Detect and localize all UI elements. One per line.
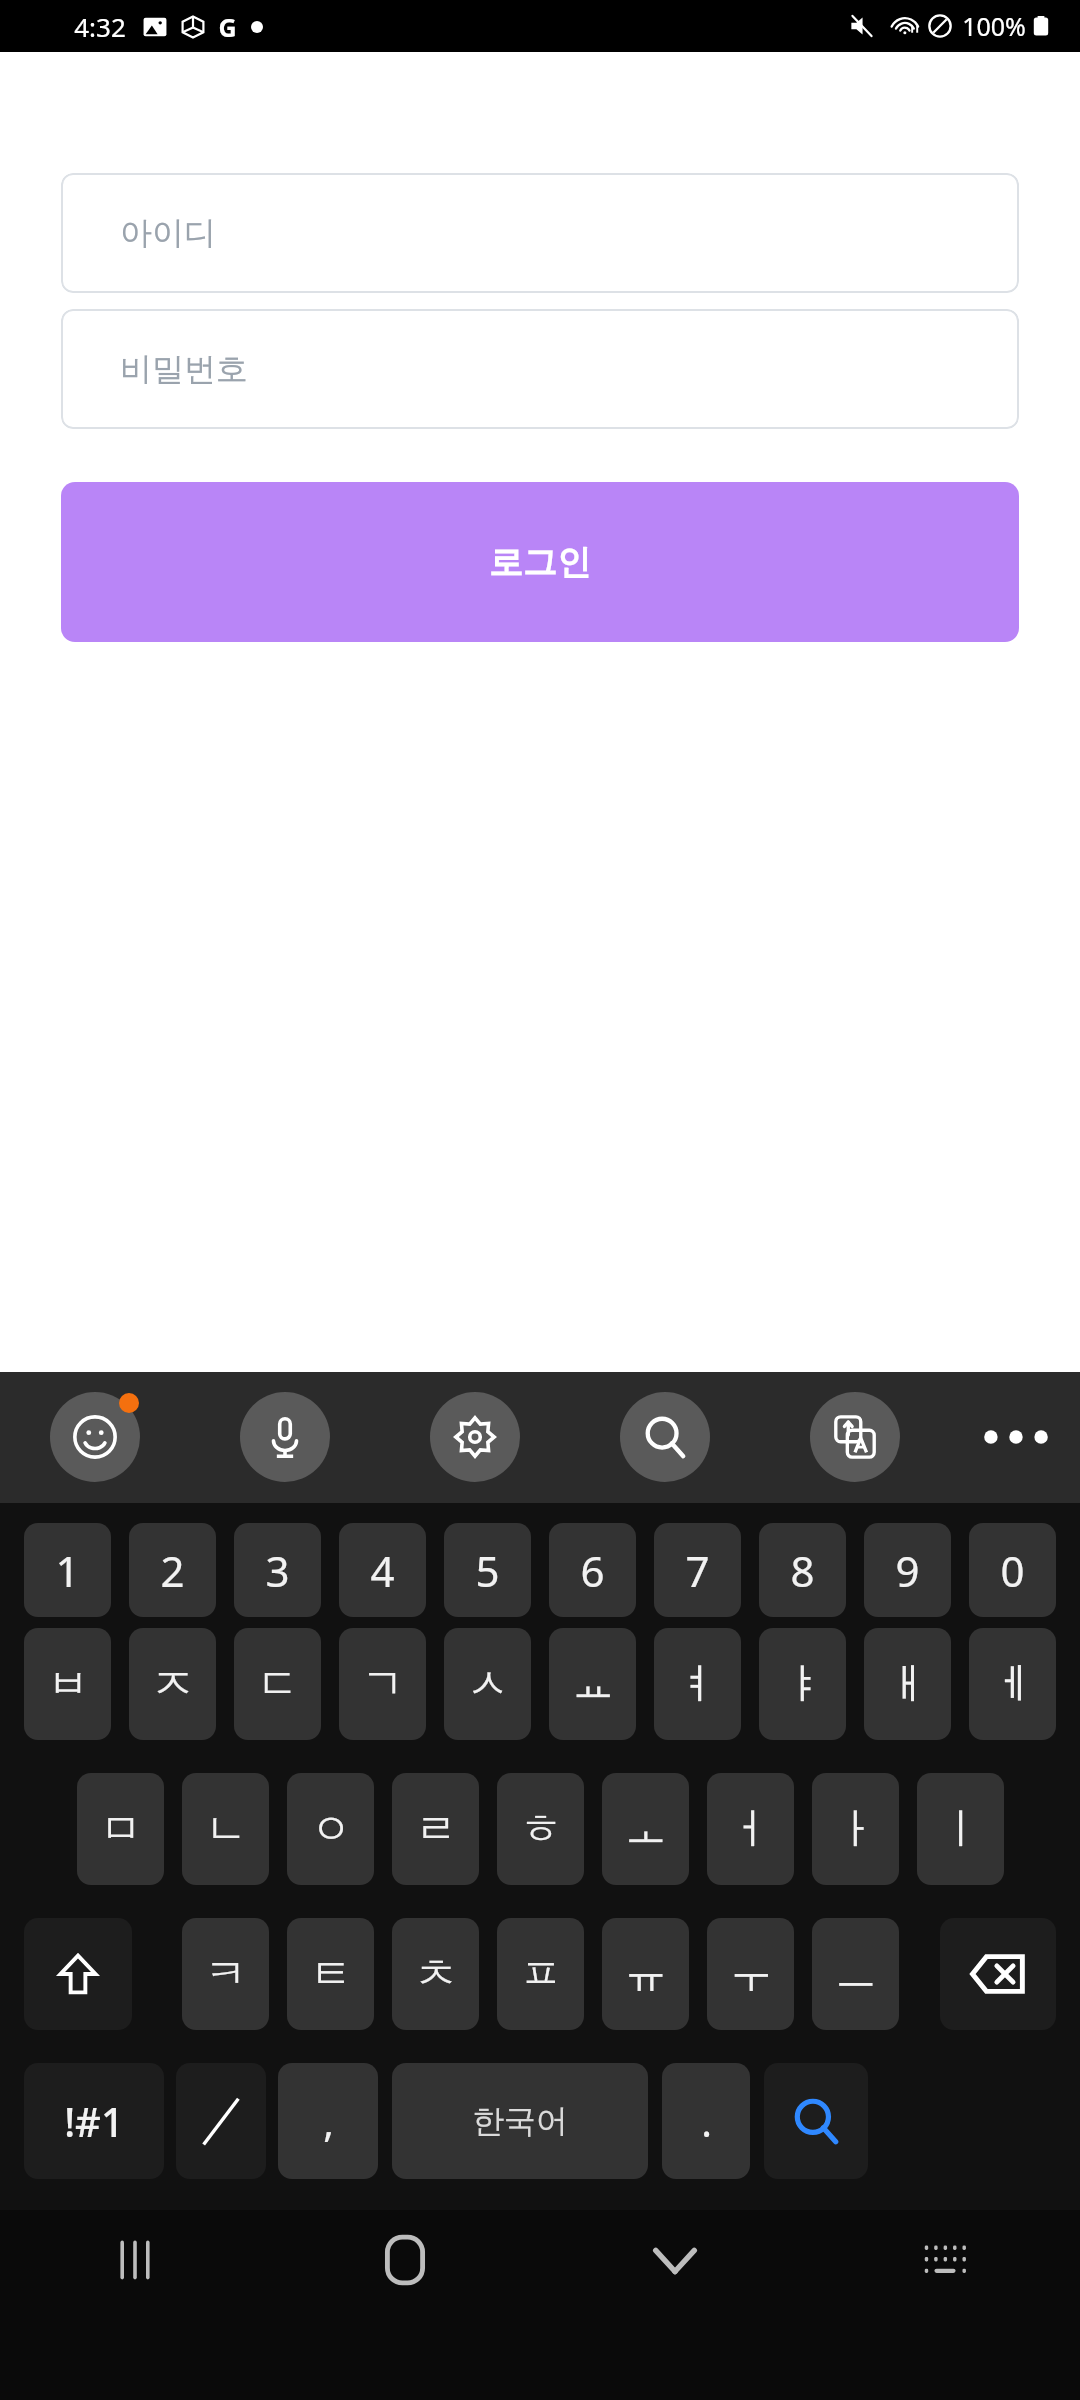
button[interactable]: ㅗ [602, 1773, 689, 1885]
button[interactable]: 9 [864, 1523, 951, 1617]
button[interactable]: ㄹ [392, 1773, 479, 1885]
staticText: 7 [685, 1542, 710, 1599]
staticText: ㄹ [415, 1803, 457, 1856]
button[interactable]: ㄷ [234, 1628, 321, 1740]
staticText: 로그인 [489, 541, 591, 584]
staticText: ㅓ [730, 1803, 772, 1856]
button[interactable]: ㄱ [339, 1628, 426, 1740]
button[interactable]: Change keyboard [810, 2210, 1080, 2310]
staticText: 3 [265, 1542, 290, 1599]
button[interactable]: 4 [339, 1523, 426, 1617]
staticText: 2 [160, 1542, 185, 1599]
button[interactable]: ㅓ [707, 1773, 794, 1885]
button[interactable]: ㅎ [497, 1773, 584, 1885]
button[interactable]: ㅋ [182, 1918, 269, 2030]
button[interactable]: 비밀번호 [61, 309, 1019, 429]
staticText: ㅁ [100, 1803, 142, 1856]
staticText: ㅋ [205, 1948, 247, 2001]
button[interactable]: Search [617, 1389, 713, 1485]
button[interactable]: ㅑ [759, 1628, 846, 1740]
button[interactable]: ㅔ [969, 1628, 1056, 1740]
button[interactable]: ㅁ [77, 1773, 164, 1885]
button[interactable]: Emoji [47, 1389, 143, 1485]
staticText: , [323, 2094, 334, 2148]
button[interactable]: 한국어 [392, 2063, 648, 2179]
button[interactable]: ㅡ [812, 1918, 899, 2030]
staticText: ㅇ [310, 1803, 352, 1856]
button[interactable]: 아이디 [61, 173, 1019, 293]
button[interactable]: 0 [969, 1523, 1056, 1617]
button[interactable]: Home [270, 2210, 540, 2310]
staticText: 비밀번호 [120, 349, 248, 389]
button[interactable]: Keyboard settings [427, 1389, 523, 1485]
staticText: 1 [55, 1542, 80, 1599]
button[interactable]: Recents [0, 2210, 270, 2310]
button[interactable]: ㅈ [129, 1628, 216, 1740]
staticText: ㅗ [625, 1803, 667, 1856]
button[interactable]: Voice input [237, 1389, 333, 1485]
button[interactable]: ㅅ [444, 1628, 531, 1740]
staticText: ㅅ [467, 1658, 509, 1711]
staticText: 6 [580, 1542, 605, 1599]
staticText: ㅕ [677, 1658, 719, 1711]
button[interactable]: ㅣ [917, 1773, 1004, 1885]
button[interactable]: !#1 [24, 2063, 164, 2179]
button[interactable]: ㅛ [549, 1628, 636, 1740]
staticText: 4:32 [74, 9, 126, 44]
staticText: ㅍ [520, 1948, 562, 2001]
staticText: ㅠ [625, 1948, 667, 2001]
staticText: 4 [370, 1542, 395, 1599]
button[interactable]: 로그인 [61, 482, 1019, 642]
staticText: 5 [475, 1542, 500, 1599]
staticText: ㅑ [782, 1658, 824, 1711]
button[interactable]: ㅕ [654, 1628, 741, 1740]
staticText: ㅎ [520, 1803, 562, 1856]
button[interactable]: ㅌ [287, 1918, 374, 2030]
button[interactable]: 5 [444, 1523, 531, 1617]
staticText: 한국어 [472, 2101, 568, 2141]
button[interactable]: , [278, 2063, 378, 2179]
staticText: ㄴ [205, 1803, 247, 1856]
staticText: ㅌ [310, 1948, 352, 2001]
staticText: 9 [895, 1542, 920, 1599]
staticText: 100% [962, 9, 1026, 43]
button[interactable]: ㅂ [24, 1628, 111, 1740]
staticText: 아이디 [120, 213, 216, 253]
button[interactable]: . [662, 2063, 750, 2179]
button[interactable]: ㅐ [864, 1628, 951, 1740]
staticText: !#1 [64, 2094, 124, 2148]
button[interactable]: ㅜ [707, 1918, 794, 2030]
staticText: ㄱ [362, 1658, 404, 1711]
button[interactable]: Backspace [940, 1918, 1056, 2030]
button[interactable]: ㄴ [182, 1773, 269, 1885]
staticText: ㅐ [887, 1658, 929, 1711]
staticText: G [218, 10, 237, 44]
staticText: ㄷ [257, 1658, 299, 1711]
button[interactable]: ㅊ [392, 1918, 479, 2030]
staticText: ㅂ [47, 1658, 89, 1711]
staticText: 0 [1000, 1542, 1025, 1599]
staticText: . [701, 2094, 712, 2148]
button[interactable]: Translate [807, 1389, 903, 1485]
button[interactable]: Search [764, 2063, 868, 2179]
button[interactable]: 3 [234, 1523, 321, 1617]
staticText: ㅈ [152, 1658, 194, 1711]
button[interactable]: 6 [549, 1523, 636, 1617]
button[interactable]: 1 [24, 1523, 111, 1617]
button[interactable]: Shift [24, 1918, 132, 2030]
button[interactable]: ㅇ [287, 1773, 374, 1885]
button[interactable]: 2 [129, 1523, 216, 1617]
button[interactable]: ㅍ [497, 1918, 584, 2030]
staticText: ㅏ [835, 1803, 877, 1856]
button[interactable]: Korean English toggle [176, 2063, 266, 2179]
button[interactable]: ㅏ [812, 1773, 899, 1885]
button[interactable]: More options [968, 1389, 1064, 1485]
staticText: ㅡ [835, 1948, 877, 2001]
staticText: ㅊ [415, 1948, 457, 2001]
button[interactable]: ㅠ [602, 1918, 689, 2030]
button[interactable]: Hide keyboard [540, 2210, 810, 2310]
button[interactable]: 8 [759, 1523, 846, 1617]
staticText: 8 [790, 1542, 815, 1599]
staticText: ㅔ [992, 1658, 1034, 1711]
button[interactable]: 7 [654, 1523, 741, 1617]
